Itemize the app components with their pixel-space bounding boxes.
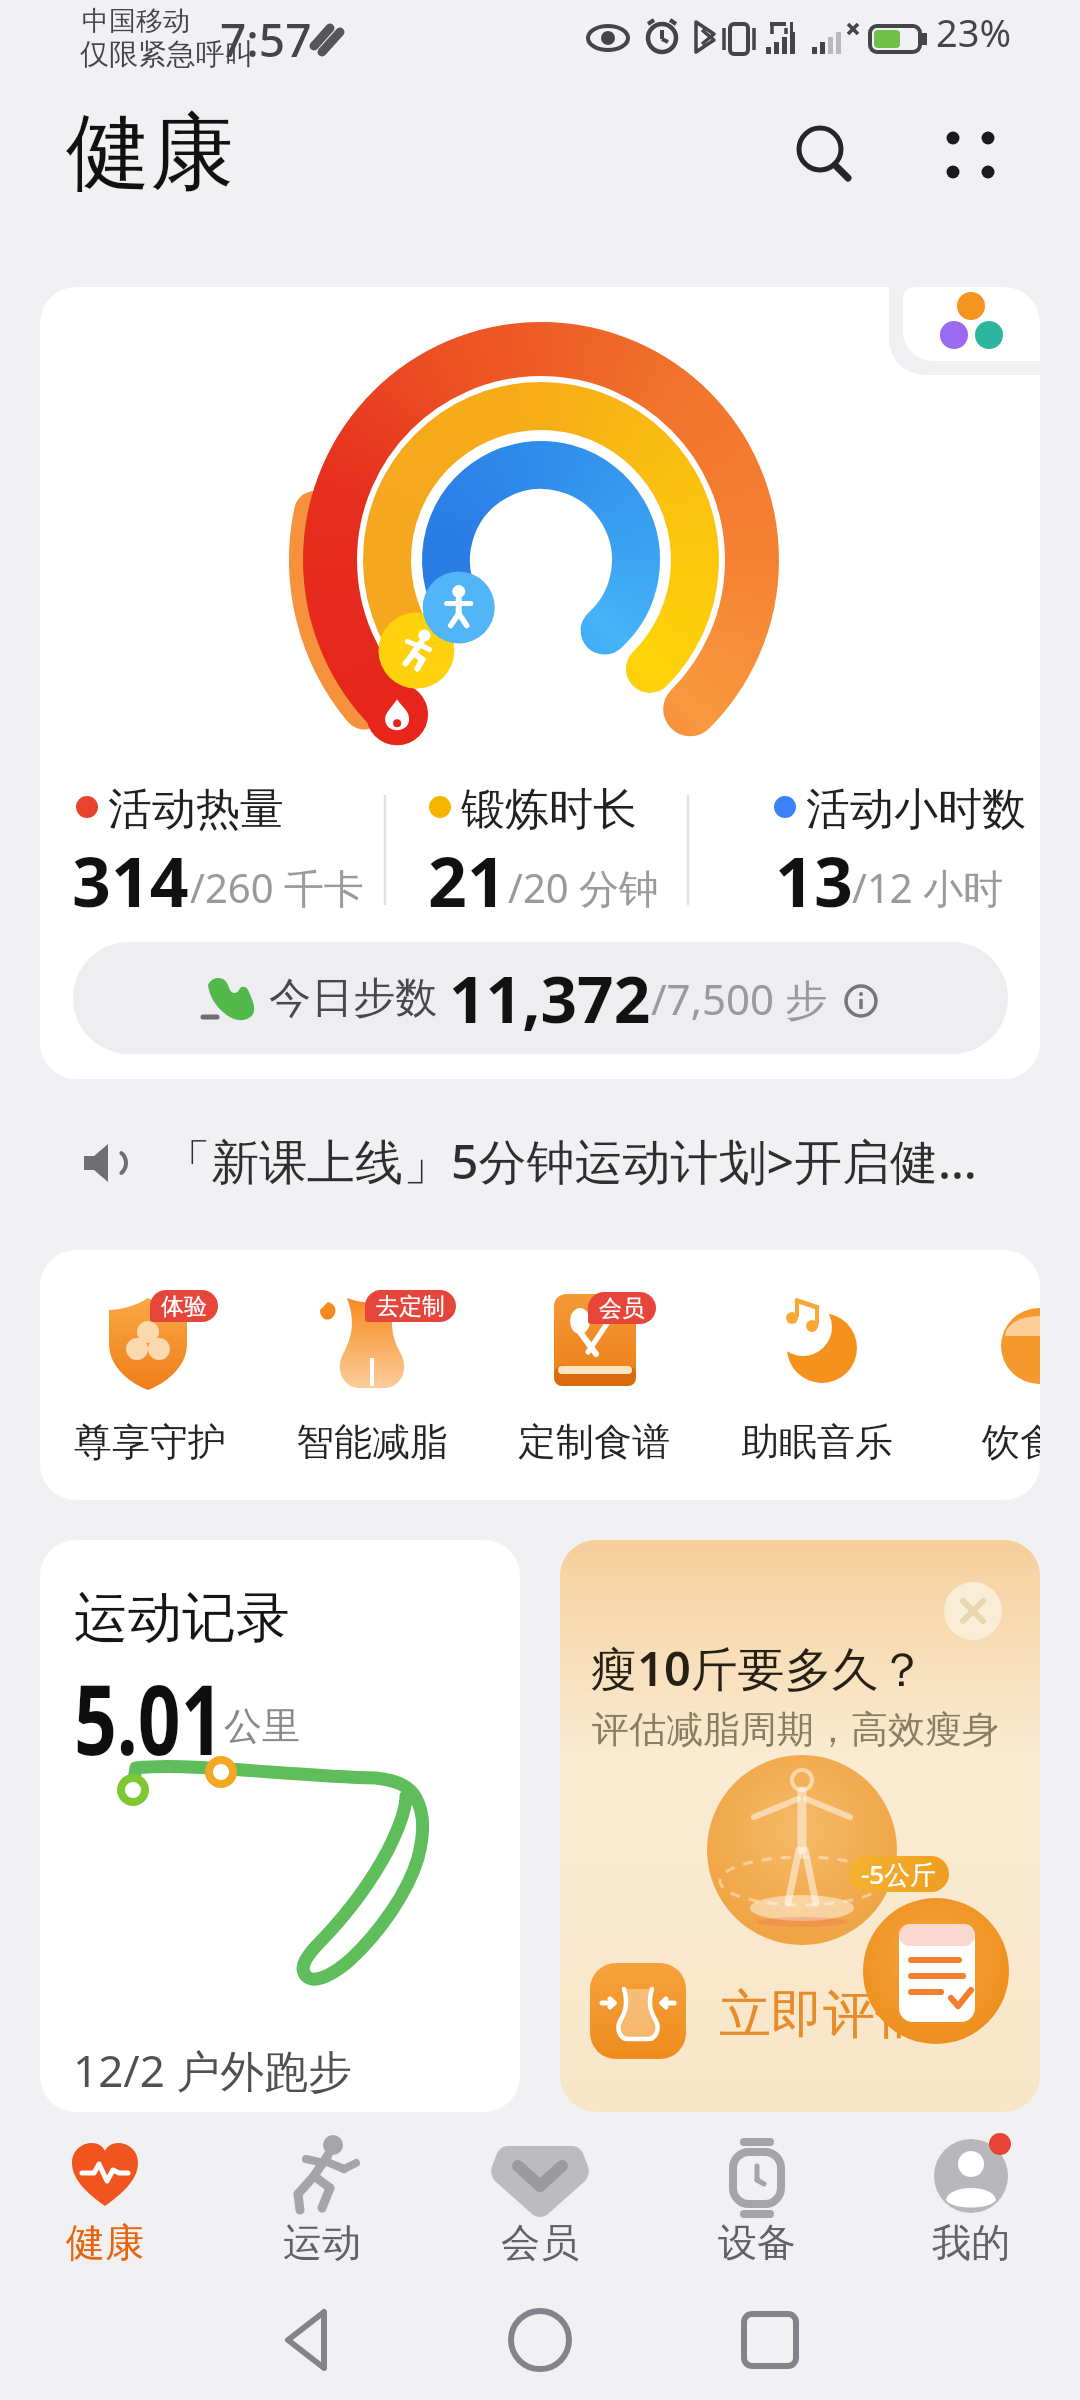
button[interactable] xyxy=(504,1250,684,1500)
staticText: 7:57 xyxy=(220,8,312,71)
button[interactable] xyxy=(460,2295,620,2385)
staticText: 今日步数 xyxy=(269,972,437,1025)
staticText: 我的 xyxy=(932,2218,1010,2267)
button[interactable] xyxy=(282,1250,462,1500)
staticText: 健康 xyxy=(66,100,234,206)
staticText: 5.01 xyxy=(74,1652,224,1783)
staticText: 314 xyxy=(72,834,189,927)
staticText: 助眠音乐 xyxy=(741,1418,893,1466)
staticText: 「新课上线」5分钟运动计划>开启健… xyxy=(163,1128,977,1194)
staticText: /260 千卡 xyxy=(190,860,364,915)
button[interactable] xyxy=(727,1250,907,1500)
staticText: 23% xyxy=(936,6,1012,58)
staticText: 会员 xyxy=(501,2218,579,2267)
staticText: 11,372 xyxy=(449,955,651,1042)
staticText: 去定制 xyxy=(376,1292,445,1321)
staticText: 瘦10斤要多久？ xyxy=(590,1636,926,1700)
button[interactable] xyxy=(25,2126,185,2266)
staticText: 运动 xyxy=(283,2218,361,2267)
staticText: 定制食谱 xyxy=(518,1418,670,1466)
button[interactable] xyxy=(944,1582,1002,1640)
button[interactable] xyxy=(794,122,854,182)
button[interactable] xyxy=(60,1110,1020,1200)
button[interactable] xyxy=(460,2126,620,2266)
button[interactable] xyxy=(677,2126,837,2266)
staticText: 智能减脂 xyxy=(296,1418,448,1466)
button[interactable]: 瘦10斤要多久？ xyxy=(560,1540,1040,2112)
staticText: 立即评估 xyxy=(719,1982,927,2048)
staticText: -5公斤 xyxy=(861,1856,937,1892)
button[interactable] xyxy=(60,1250,240,1500)
button[interactable] xyxy=(242,2126,402,2266)
staticText: 中国移动 xyxy=(82,4,190,38)
staticText: 仅限紧急呼叫 xyxy=(80,36,254,73)
staticText: 锻炼时长 xyxy=(461,782,637,837)
staticText: 13 xyxy=(775,834,853,927)
button[interactable] xyxy=(936,124,1000,188)
staticText: /20 分钟 xyxy=(508,860,660,915)
staticText: 12/2 户外跑步 xyxy=(73,2040,353,2100)
staticText: 设备 xyxy=(718,2218,796,2267)
staticText: 运动记录 xyxy=(74,1584,290,1652)
staticText: 饮食记 xyxy=(982,1418,1040,1466)
staticText: 公里 xyxy=(224,1702,300,1750)
button[interactable] xyxy=(225,2295,385,2385)
staticText: 评估减脂周期，高效瘦身 xyxy=(592,1706,999,1753)
button[interactable]: 今日步数 xyxy=(73,942,1008,1054)
staticText: 健康 xyxy=(66,2218,144,2267)
staticText: 21 xyxy=(428,834,506,927)
button[interactable] xyxy=(40,287,1040,1079)
staticText: 体验 xyxy=(161,1292,207,1321)
button[interactable] xyxy=(903,287,1040,361)
staticText: 活动热量 xyxy=(108,782,284,837)
button[interactable] xyxy=(695,2295,855,2385)
staticText: 会员 xyxy=(599,1294,645,1323)
staticText: /7,500 步 xyxy=(651,970,827,1027)
button[interactable] xyxy=(949,1250,1040,1500)
staticText: 尊享守护 xyxy=(74,1418,226,1466)
button[interactable]: 运动记录 xyxy=(40,1540,520,2112)
button[interactable] xyxy=(891,2126,1051,2266)
staticText: /12 小时 xyxy=(852,860,1004,915)
staticText: 活动小时数 xyxy=(806,782,1026,837)
